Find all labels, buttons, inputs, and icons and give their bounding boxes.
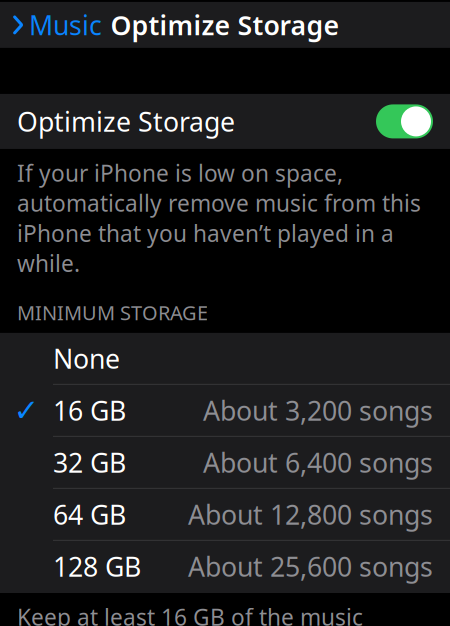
staticText: 64 GB <box>53 497 126 532</box>
button[interactable]: None <box>0 333 450 385</box>
button[interactable]: 128 GB <box>0 541 450 593</box>
staticText: Optimize Storage <box>110 7 339 43</box>
staticText: 32 GB <box>53 445 126 480</box>
staticText: 16 GB <box>53 393 126 428</box>
staticText: About 3,200 songs <box>203 393 433 428</box>
staticText: ✓ <box>13 393 39 428</box>
staticText: About 6,400 songs <box>203 445 433 480</box>
staticText: Keep at least 16 GB of the music you’ve … <box>17 602 391 626</box>
staticText: Optimize Storage <box>17 104 235 139</box>
button[interactable]: 64 GB <box>0 489 450 541</box>
button[interactable]: Optimize Storage <box>0 94 450 149</box>
staticText: About 12,800 songs <box>188 497 433 532</box>
staticText: About 25,600 songs <box>188 549 433 584</box>
staticText: Music <box>29 7 102 43</box>
staticText: If your iPhone is low on space, automati… <box>17 158 421 278</box>
button[interactable]: Music <box>0 0 102 51</box>
button[interactable]: ✓ <box>0 385 450 437</box>
staticText: None <box>53 341 120 376</box>
staticText: MINIMUM STORAGE <box>17 299 208 326</box>
staticText: 128 GB <box>53 549 141 584</box>
button[interactable]: 32 GB <box>0 437 450 489</box>
